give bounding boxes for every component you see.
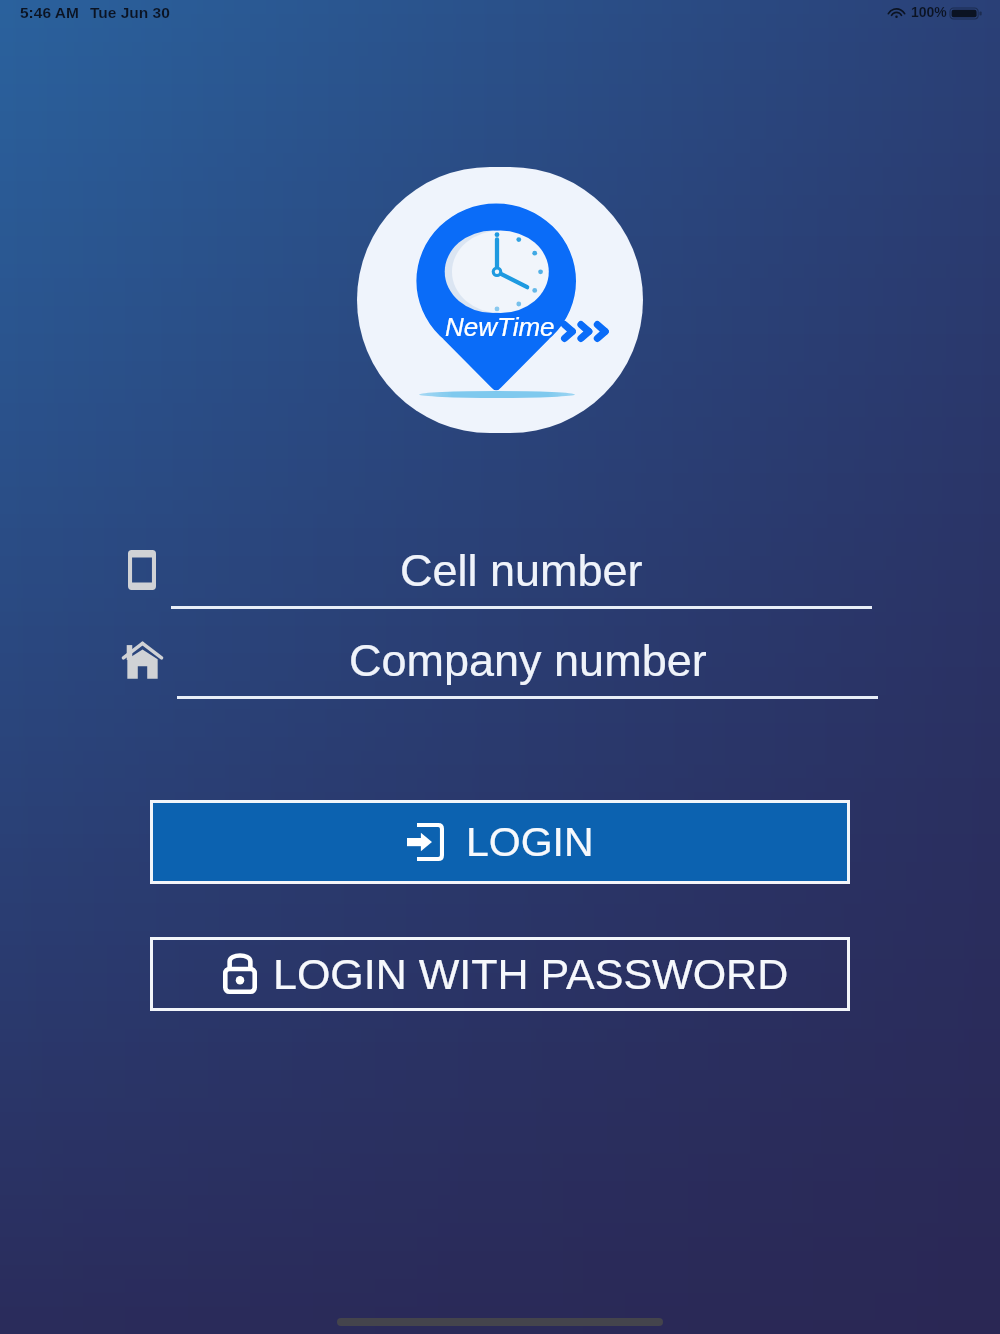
staticText: Company number (349, 635, 707, 685)
staticText: Tue Jun 30 (90, 4, 170, 21)
other: Battery full (950, 8, 982, 19)
staticText: LOGIN WITH PASSWORD (273, 950, 789, 998)
staticText: Cell number (400, 545, 643, 595)
staticText: 100% (911, 4, 947, 20)
staticText: NewTime (445, 312, 555, 341)
button[interactable]: Cell number (171, 531, 872, 609)
other: Wi-Fi (888, 8, 905, 18)
staticText: 5:46 AM (20, 4, 79, 21)
staticText: LOGIN (466, 819, 594, 865)
button[interactable]: LOGIN WITH PASSWORD (150, 937, 850, 1011)
button[interactable]: Company number (177, 621, 878, 699)
button[interactable]: LOGIN (150, 800, 850, 884)
